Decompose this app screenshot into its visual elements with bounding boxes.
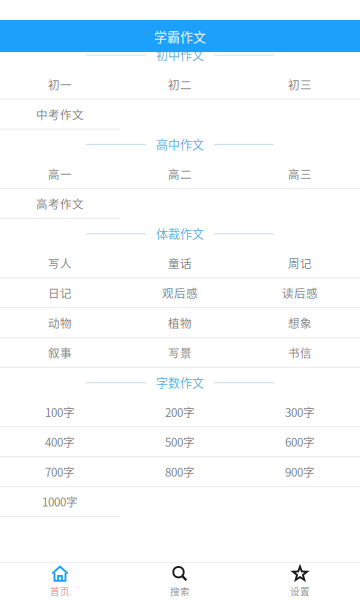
staticText: 初二 — [168, 76, 192, 93]
staticText: 100字 — [45, 404, 75, 420]
button[interactable]: 高考作文 — [0, 189, 120, 219]
staticText: 高三 — [288, 165, 312, 182]
button[interactable]: 500字 — [120, 427, 240, 457]
button[interactable]: 写人 — [0, 248, 120, 278]
button[interactable]: 中考作文 — [0, 100, 120, 130]
staticText: 初三 — [288, 76, 312, 93]
button[interactable]: 写景 — [120, 338, 240, 368]
staticText: 写景 — [168, 344, 192, 361]
button[interactable]: 200字 — [120, 397, 240, 427]
staticText: 体裁作文 — [156, 225, 204, 242]
button[interactable]: 搜索 — [120, 562, 240, 600]
button[interactable]: 初三 — [240, 70, 360, 100]
staticText: 周记 — [288, 255, 312, 271]
button[interactable]: 动物 — [0, 308, 120, 338]
button[interactable]: 900字 — [240, 457, 360, 487]
staticText: 800字 — [165, 463, 195, 480]
button[interactable]: 初二 — [120, 70, 240, 100]
button[interactable]: 观后感 — [120, 278, 240, 308]
staticText: 中考作文 — [36, 106, 84, 122]
staticText: 动物 — [48, 314, 72, 331]
staticText: 想象 — [288, 314, 312, 331]
button[interactable]: 800字 — [120, 457, 240, 487]
button[interactable]: 叙事 — [0, 338, 120, 368]
staticText: 童话 — [168, 255, 192, 271]
button[interactable]: 日记 — [0, 278, 120, 308]
staticText: 设置 — [290, 584, 310, 598]
button[interactable]: 童话 — [120, 248, 240, 278]
button[interactable]: 植物 — [120, 308, 240, 338]
staticText: 300字 — [285, 404, 315, 420]
button[interactable]: 600字 — [240, 427, 360, 457]
button[interactable]: 想象 — [240, 308, 360, 338]
button[interactable]: 读后感 — [240, 278, 360, 308]
staticText: 首页 — [50, 584, 70, 598]
button[interactable]: 设置 — [240, 562, 360, 600]
button[interactable]: 高三 — [240, 159, 360, 189]
staticText: 叙事 — [48, 344, 72, 361]
button[interactable]: 首页 — [0, 562, 120, 600]
staticText: 高考作文 — [36, 195, 84, 212]
staticText: 600字 — [285, 433, 315, 450]
staticText: 初中作文 — [156, 46, 204, 64]
button[interactable]: 100字 — [0, 397, 120, 427]
staticText: 学霸作文 — [154, 27, 206, 45]
button[interactable]: 1000字 — [0, 487, 120, 517]
button[interactable]: 700字 — [0, 457, 120, 487]
staticText: 高一 — [48, 165, 72, 182]
button[interactable]: 周记 — [240, 248, 360, 278]
staticText: 400字 — [45, 433, 75, 450]
button[interactable]: 400字 — [0, 427, 120, 457]
staticText: 植物 — [168, 314, 192, 331]
staticText: 高中作文 — [156, 136, 204, 153]
button[interactable]: 初一 — [0, 70, 120, 100]
staticText: 1000字 — [42, 493, 78, 510]
staticText: 700字 — [45, 463, 75, 480]
button[interactable]: 300字 — [240, 397, 360, 427]
staticText: 500字 — [165, 433, 195, 450]
staticText: 读后感 — [282, 284, 318, 301]
staticText: 观后感 — [162, 284, 198, 301]
button[interactable]: 高二 — [120, 159, 240, 189]
staticText: 日记 — [48, 284, 72, 301]
staticText: 初一 — [48, 76, 72, 93]
staticText: 搜索 — [170, 584, 190, 598]
button[interactable]: 书信 — [240, 338, 360, 368]
staticText: 书信 — [288, 344, 312, 361]
button[interactable]: 高一 — [0, 159, 120, 189]
staticText: 写人 — [48, 255, 72, 271]
staticText: 高二 — [168, 165, 192, 182]
staticText: 900字 — [285, 463, 315, 480]
staticText: 200字 — [165, 404, 195, 420]
staticText: 字数作文 — [156, 374, 204, 391]
